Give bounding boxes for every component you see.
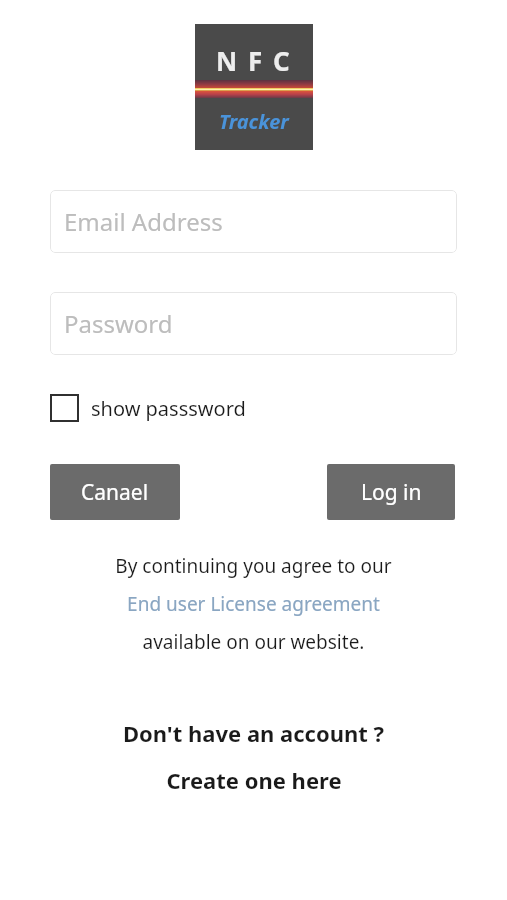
staticText: Log in bbox=[361, 478, 422, 507]
staticText: show passsword bbox=[91, 395, 246, 422]
staticText: By continuing you agree to our bbox=[0, 553, 507, 579]
staticText: Create one here bbox=[166, 765, 342, 795]
button[interactable]: Email Address bbox=[50, 190, 457, 253]
button[interactable]: Log in bbox=[327, 464, 455, 520]
staticText: Don't have an account ? bbox=[0, 718, 507, 748]
staticText: N F C bbox=[216, 43, 292, 78]
button[interactable]: Create one here bbox=[166, 765, 342, 795]
staticText: available on our website. bbox=[0, 629, 507, 655]
staticText: Email Address bbox=[64, 205, 223, 238]
staticText: Canael bbox=[81, 478, 149, 507]
staticText: Tracker bbox=[219, 108, 289, 135]
staticText: End user License agreement bbox=[127, 591, 380, 617]
button[interactable]: Password bbox=[50, 292, 457, 355]
button[interactable]: End user License agreement bbox=[127, 591, 380, 617]
staticText: Password bbox=[64, 307, 173, 340]
button[interactable]: Canael bbox=[50, 464, 180, 520]
button[interactable]: show passsword bbox=[50, 392, 246, 424]
